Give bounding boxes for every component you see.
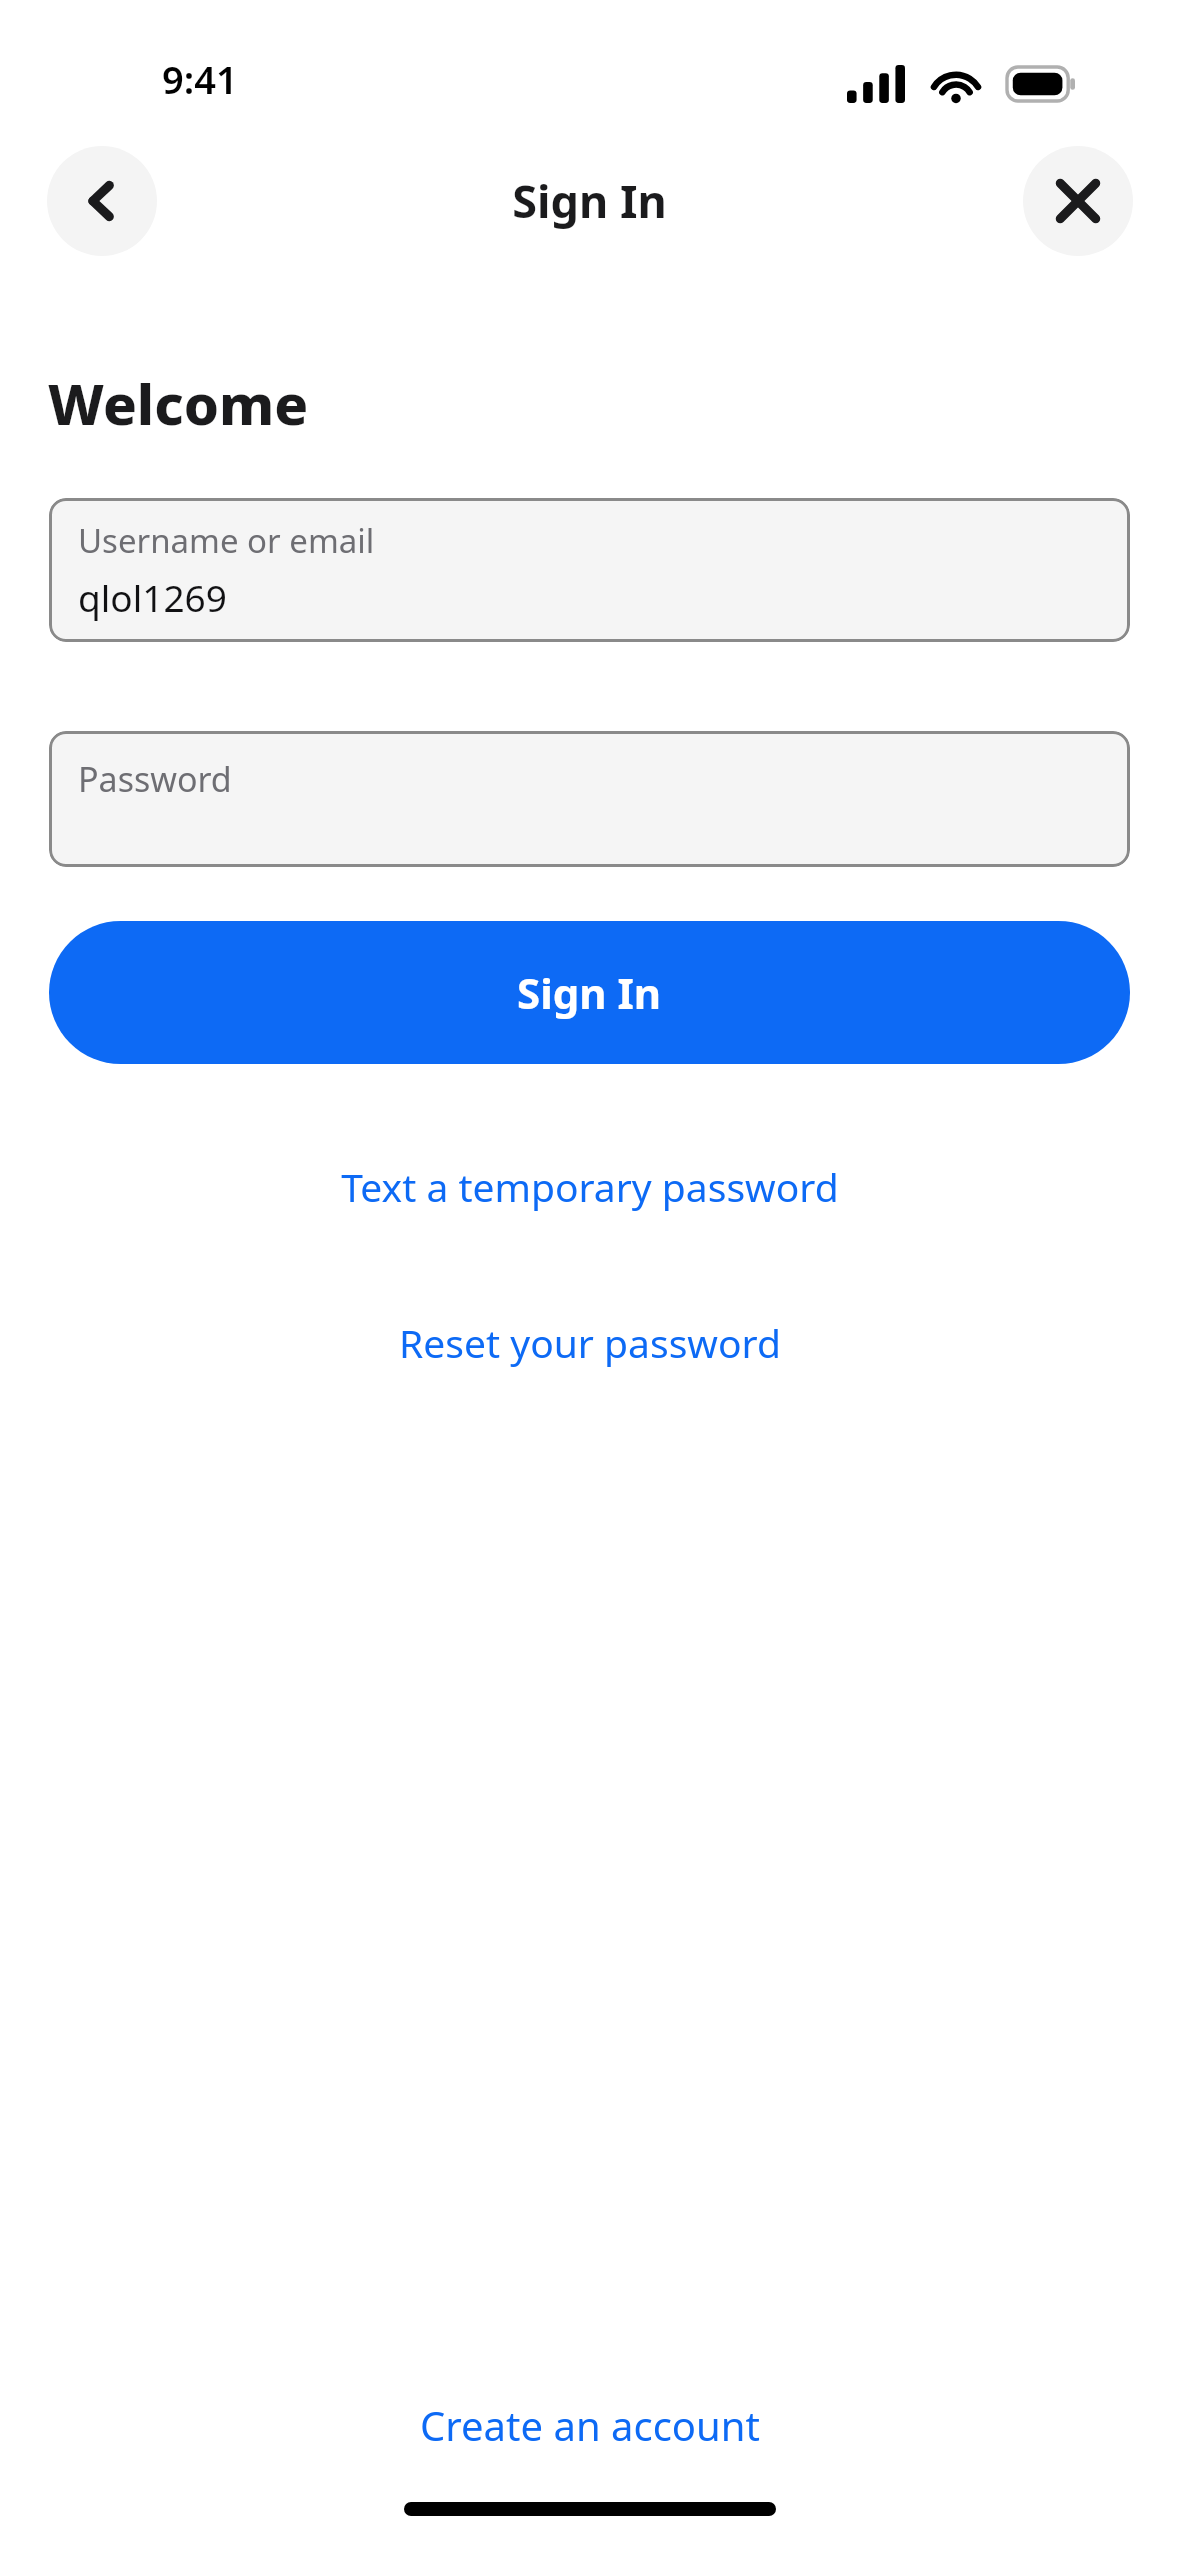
- staticText: 9:41: [162, 53, 238, 105]
- staticText: qlol1269: [78, 572, 227, 622]
- staticText: Sign In: [512, 170, 667, 231]
- button[interactable]: Back: [47, 146, 157, 256]
- button[interactable]: Password: [49, 731, 1130, 867]
- staticText: Text a temporary password: [341, 1160, 839, 1213]
- staticText: Username or email: [78, 518, 375, 563]
- button[interactable]: Text a temporary password: [0, 1148, 1179, 1224]
- button[interactable]: Close: [1023, 146, 1133, 256]
- staticText: Create an account: [420, 2398, 760, 2452]
- button[interactable]: Username or email: [49, 498, 1130, 642]
- staticText: Sign In: [517, 964, 662, 1021]
- staticText: Welcome: [48, 365, 309, 441]
- staticText: Password: [78, 756, 232, 802]
- button[interactable]: Sign In: [49, 921, 1130, 1064]
- button[interactable]: Reset your password: [0, 1304, 1179, 1380]
- button[interactable]: Create an account: [0, 2386, 1179, 2464]
- staticText: Reset your password: [399, 1316, 781, 1369]
